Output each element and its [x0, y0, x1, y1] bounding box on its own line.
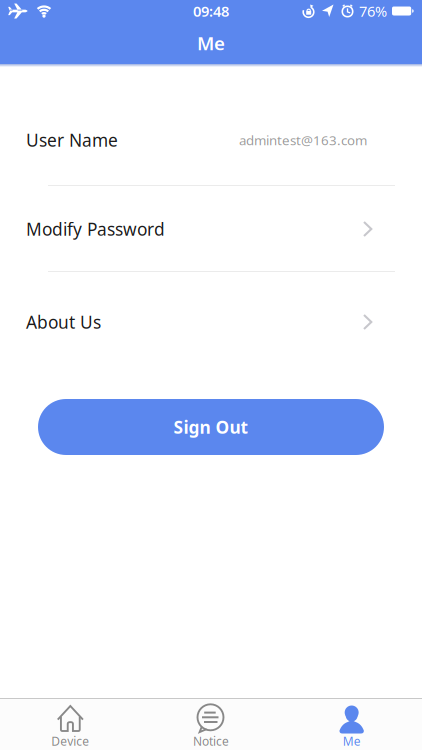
staticText: Modify Password — [26, 217, 165, 240]
staticText: 76% — [359, 1, 387, 21]
button[interactable]: About Us — [0, 304, 422, 340]
button[interactable]: Notice — [141, 703, 281, 747]
staticText: Me — [343, 733, 361, 749]
staticText: Sign Out — [173, 415, 248, 438]
staticText: Me — [197, 31, 225, 55]
staticText: About Us — [26, 310, 101, 333]
button[interactable]: Sign Out — [38, 399, 384, 455]
staticText: Device — [51, 733, 89, 749]
button[interactable]: Me — [281, 703, 422, 747]
staticText: 09:48 — [193, 1, 229, 21]
staticText: Notice — [193, 733, 229, 749]
button[interactable]: User Name — [0, 122, 422, 158]
button[interactable]: Modify Password — [0, 211, 422, 247]
button[interactable]: Device — [0, 703, 141, 747]
staticText: admintest@163.com — [239, 131, 367, 149]
staticText: User Name — [26, 128, 118, 151]
